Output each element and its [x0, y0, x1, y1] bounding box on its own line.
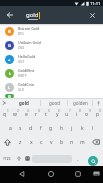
button[interactable]: l [88, 122, 98, 134]
staticText: 2 [17, 109, 19, 113]
staticText: 11:11 [90, 1, 101, 6]
staticText: r [35, 111, 38, 118]
button[interactable]: i [72, 108, 82, 120]
button[interactable]: z [15, 136, 25, 148]
button[interactable]: + [0, 52, 103, 66]
staticText: ?123 [3, 156, 11, 161]
button[interactable]: c [36, 136, 46, 148]
staticText: golden [73, 100, 88, 106]
staticText: o [85, 111, 89, 118]
staticText: . [77, 155, 79, 163]
button[interactable]: x [26, 136, 36, 148]
staticText: + [8, 57, 11, 62]
staticText: gold [19, 100, 29, 106]
button[interactable]: g [46, 122, 56, 134]
staticText: 1 [7, 109, 9, 113]
button[interactable]: r [31, 108, 41, 120]
staticText: Bitcoin Gold [18, 26, 40, 31]
staticText: q [3, 111, 7, 118]
staticText: f [40, 125, 42, 132]
button[interactable] [88, 156, 98, 166]
staticText: 3 [27, 109, 29, 113]
staticText: 4 [38, 109, 40, 113]
button[interactable]: o [82, 108, 92, 120]
staticText: h [60, 125, 64, 132]
button[interactable] [71, 167, 85, 181]
button[interactable] [5, 10, 15, 20]
staticText: MNTP [18, 74, 27, 78]
button[interactable] [90, 167, 102, 179]
staticText: k [81, 125, 84, 132]
button[interactable]: ?123 [0, 151, 14, 166]
staticText: gold [26, 11, 39, 19]
staticText: 8 [79, 109, 81, 113]
staticText: z [19, 139, 22, 146]
button[interactable]: L [0, 80, 103, 94]
button[interactable]: e [21, 108, 31, 120]
staticText: good [49, 100, 60, 106]
staticText: c [40, 139, 43, 146]
button[interactable] [14, 151, 23, 166]
button[interactable]: k [77, 122, 87, 134]
staticText: 6 [58, 109, 60, 113]
staticText: 9 [89, 109, 91, 113]
button[interactable]: gold [7, 98, 40, 108]
staticText: t [9, 71, 11, 76]
staticText: b [60, 139, 64, 146]
staticText: j [71, 125, 73, 132]
button[interactable]: G [0, 94, 103, 98]
button[interactable] [15, 167, 29, 181]
button[interactable] [0, 98, 7, 108]
button[interactable]: t [41, 108, 51, 120]
staticText: w [13, 111, 17, 118]
button[interactable] [0, 136, 15, 148]
staticText: UKG [18, 46, 25, 50]
button[interactable]: B [0, 24, 103, 38]
staticText: d [29, 125, 33, 132]
button[interactable]: v [46, 136, 56, 148]
staticText: GoldCoin [18, 82, 35, 87]
button[interactable] [88, 136, 103, 148]
staticText: GoldMint [18, 68, 35, 73]
button[interactable]: t [0, 66, 103, 80]
button[interactable]: b [57, 136, 67, 148]
staticText: HelloGold [18, 54, 36, 59]
staticText: s [19, 125, 22, 132]
button[interactable]: p [93, 108, 103, 120]
staticText: u [65, 111, 69, 118]
button[interactable]: G [0, 38, 103, 52]
button[interactable] [93, 98, 103, 108]
staticText: BTG [18, 32, 24, 36]
button[interactable] [44, 167, 58, 181]
staticText: 7 [69, 109, 71, 113]
button[interactable]: y [52, 108, 62, 120]
staticText: Unikoin Gold [18, 40, 41, 45]
staticText: v [50, 139, 53, 146]
button[interactable]: w [10, 108, 20, 120]
button[interactable]: golden [68, 98, 92, 108]
button[interactable] [23, 151, 31, 166]
staticText: G [8, 94, 11, 98]
button[interactable]: a [5, 122, 15, 134]
button[interactable]: u [62, 108, 72, 120]
staticText: t [45, 111, 47, 118]
button[interactable] [87, 10, 97, 20]
staticText: GLD [18, 88, 24, 92]
staticText: i [76, 111, 78, 118]
button[interactable]: m [77, 136, 87, 148]
staticText: y [56, 111, 59, 118]
button[interactable]: f [36, 122, 46, 134]
button[interactable]: d [26, 122, 36, 134]
button[interactable]: s [15, 122, 25, 134]
button[interactable]: . [72, 151, 84, 166]
staticText: HGT [18, 60, 25, 64]
button[interactable]: q [0, 108, 10, 120]
staticText: 0 [99, 109, 101, 113]
button[interactable]: good [41, 98, 67, 108]
button[interactable]: n [67, 136, 77, 148]
staticText: n [70, 139, 74, 146]
button[interactable]: j [67, 122, 77, 134]
button[interactable]: h [57, 122, 67, 134]
staticText: p [96, 111, 100, 118]
